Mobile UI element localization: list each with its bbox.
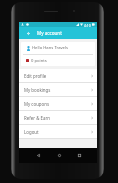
button[interactable]: Hello Hans Travels (21, 42, 95, 54)
button[interactable]: Refer & Earn (19, 111, 97, 124)
button[interactable]: Back (32, 149, 44, 161)
staticText: Refer & Earn (24, 115, 50, 121)
staticText: Logout (24, 129, 39, 135)
staticText: Hello Hans Travels (32, 45, 69, 51)
staticText: My account (37, 30, 62, 36)
button[interactable]: Edit profile (19, 69, 97, 82)
staticText: 4:10 (84, 23, 91, 28)
button[interactable]: Home (53, 149, 65, 161)
staticText: My coupons (24, 101, 50, 107)
staticText: My bookings (24, 87, 51, 93)
button[interactable]: Back (22, 27, 34, 39)
button[interactable]: 0 points (21, 55, 95, 66)
button[interactable]: Logout (19, 125, 97, 138)
staticText: 0 points (31, 58, 47, 64)
button[interactable]: My bookings (19, 83, 97, 96)
staticText: Edit profile (24, 73, 47, 79)
button[interactable]: My coupons (19, 97, 97, 110)
button[interactable]: Recents (73, 149, 85, 161)
